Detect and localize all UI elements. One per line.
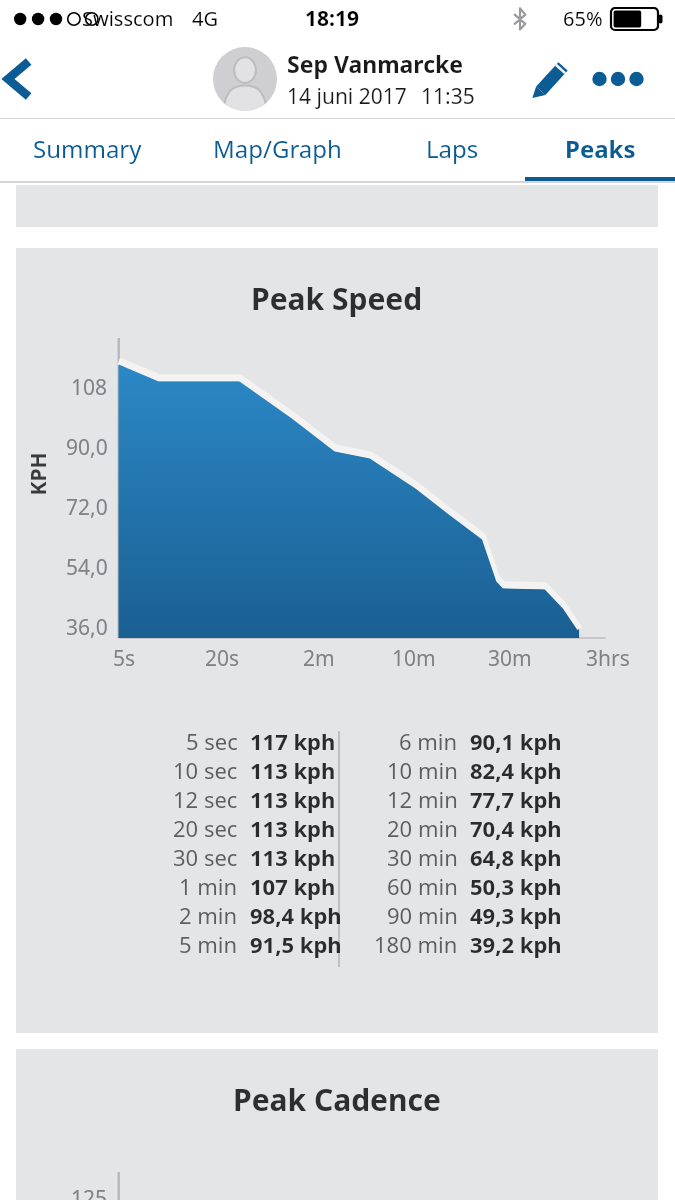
staticText: 90 min bbox=[387, 900, 458, 929]
staticText: 36,0 bbox=[66, 613, 108, 642]
staticText: 11:35 bbox=[421, 82, 475, 111]
staticText: 108 bbox=[71, 373, 108, 402]
staticText: 49,3 kph bbox=[470, 900, 562, 929]
staticText: 2 min bbox=[179, 900, 238, 929]
staticText: 4G bbox=[192, 5, 218, 32]
button[interactable]: Map/Graph bbox=[174, 119, 380, 183]
staticText: 90,0 bbox=[66, 433, 108, 462]
staticText: 20 sec bbox=[173, 813, 238, 842]
staticText: Peak Cadence bbox=[233, 1079, 441, 1120]
staticText: 39,2 kph bbox=[470, 929, 562, 958]
staticText: 30 sec bbox=[173, 842, 238, 871]
staticText: 10m bbox=[392, 644, 436, 673]
staticText: 30m bbox=[488, 644, 532, 673]
staticText: Peak Speed bbox=[251, 278, 423, 319]
staticText: 10 min bbox=[387, 755, 458, 784]
staticText: KPH bbox=[23, 451, 52, 495]
button[interactable]: Sep Vanmarcke bbox=[213, 47, 475, 111]
staticText: 2m bbox=[303, 644, 335, 673]
staticText: 10 sec bbox=[173, 755, 238, 784]
staticText: 5 min bbox=[179, 929, 238, 958]
staticText: 64,8 kph bbox=[470, 842, 562, 871]
staticText: 65% bbox=[563, 5, 603, 32]
button[interactable]: Edit bbox=[518, 47, 582, 111]
staticText: 113 kph bbox=[250, 813, 336, 842]
staticText: Swisscom bbox=[82, 5, 174, 32]
button[interactable]: More options bbox=[586, 47, 650, 111]
staticText: 18:19 bbox=[305, 4, 359, 33]
staticText: 117 kph bbox=[250, 726, 336, 755]
staticText: 90,1 kph bbox=[470, 726, 562, 755]
button[interactable]: Laps bbox=[380, 119, 525, 183]
staticText: 60 min bbox=[387, 871, 458, 900]
staticText: 5s bbox=[113, 644, 136, 673]
staticText: 98,4 kph bbox=[250, 900, 342, 929]
staticText: 113 kph bbox=[250, 784, 336, 813]
staticText: Map/Graph bbox=[213, 132, 342, 165]
staticText: 77,7 kph bbox=[470, 784, 562, 813]
staticText: 6 min bbox=[399, 726, 458, 755]
staticText: 20s bbox=[205, 644, 240, 673]
staticText: 12 sec bbox=[173, 784, 238, 813]
staticText: 1 min bbox=[179, 871, 238, 900]
button[interactable]: Peak Cadence bbox=[16, 1049, 658, 1200]
staticText: 14 juni 2017 bbox=[287, 82, 407, 111]
staticText: 113 kph bbox=[250, 842, 336, 871]
staticText: 54,0 bbox=[66, 553, 108, 582]
staticText: 107 kph bbox=[250, 871, 336, 900]
staticText: 72,0 bbox=[66, 493, 108, 522]
staticText: Laps bbox=[426, 132, 479, 165]
staticText: 5 sec bbox=[186, 726, 238, 755]
button[interactable]: Back bbox=[0, 47, 64, 111]
staticText: Peaks bbox=[565, 132, 636, 165]
staticText: 180 min bbox=[374, 929, 458, 958]
button[interactable]: Peak Speed bbox=[16, 248, 658, 1033]
staticText: 50,3 kph bbox=[470, 871, 562, 900]
staticText: 12 min bbox=[387, 784, 458, 813]
staticText: 70,4 kph bbox=[470, 813, 562, 842]
button[interactable]: Peaks bbox=[525, 119, 675, 183]
staticText: 91,5 kph bbox=[250, 929, 342, 958]
staticText: Summary bbox=[33, 132, 142, 165]
button[interactable]: Summary bbox=[0, 119, 174, 183]
staticText: 125 bbox=[71, 1184, 108, 1200]
staticText: 82,4 kph bbox=[470, 755, 562, 784]
staticText: 3hrs bbox=[586, 644, 630, 673]
staticText: 30 min bbox=[387, 842, 458, 871]
staticText: 113 kph bbox=[250, 755, 336, 784]
staticText: Sep Vanmarcke bbox=[287, 48, 464, 79]
staticText: 20 min bbox=[387, 813, 458, 842]
